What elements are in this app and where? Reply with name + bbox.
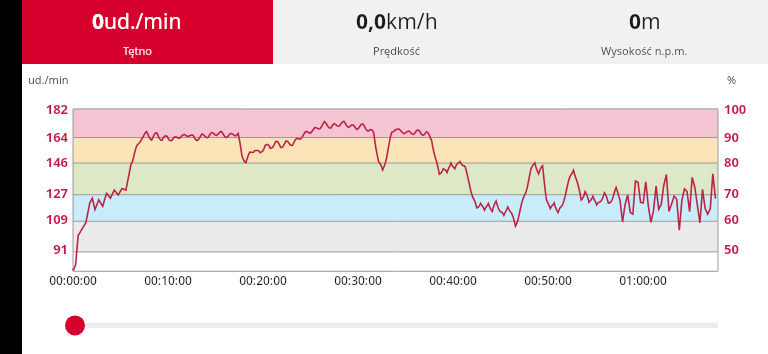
staticText: 80 bbox=[724, 153, 739, 171]
staticText: 0ud./min bbox=[92, 7, 182, 36]
button[interactable]: 0m bbox=[521, 0, 768, 64]
staticText: ud./min bbox=[28, 72, 69, 87]
staticText: 00:20:00 bbox=[225, 272, 301, 288]
staticText: 01:00:00 bbox=[605, 272, 681, 288]
staticText: 164 bbox=[38, 128, 68, 146]
staticText: 100 bbox=[724, 100, 747, 118]
staticText: 70 bbox=[724, 184, 739, 202]
staticText: 00:00:00 bbox=[35, 272, 111, 288]
staticText: 00:50:00 bbox=[510, 272, 586, 288]
staticText: 0,0km/h bbox=[356, 7, 438, 36]
staticText: 00:10:00 bbox=[130, 272, 206, 288]
staticText: 109 bbox=[38, 210, 68, 228]
staticText: 0m bbox=[629, 7, 661, 36]
button[interactable]: Wykres tętna bbox=[0, 64, 768, 354]
staticText: 90 bbox=[724, 128, 739, 146]
staticText: 146 bbox=[38, 153, 68, 171]
staticText: Wysokość n.p.m. bbox=[601, 43, 688, 58]
button[interactable]: 0,0km/h bbox=[273, 0, 521, 64]
staticText: 127 bbox=[38, 184, 68, 202]
staticText: 60 bbox=[724, 210, 739, 228]
staticText: % bbox=[727, 72, 737, 87]
staticText: 91 bbox=[46, 240, 68, 258]
staticText: Tętno bbox=[123, 43, 152, 58]
staticText: Prędkość bbox=[373, 43, 421, 58]
staticText: 50 bbox=[724, 240, 739, 258]
staticText: 00:30:00 bbox=[320, 272, 396, 288]
staticText: 00:40:00 bbox=[415, 272, 491, 288]
staticText: 182 bbox=[38, 100, 68, 118]
button[interactable]: 0ud./min bbox=[0, 0, 273, 64]
